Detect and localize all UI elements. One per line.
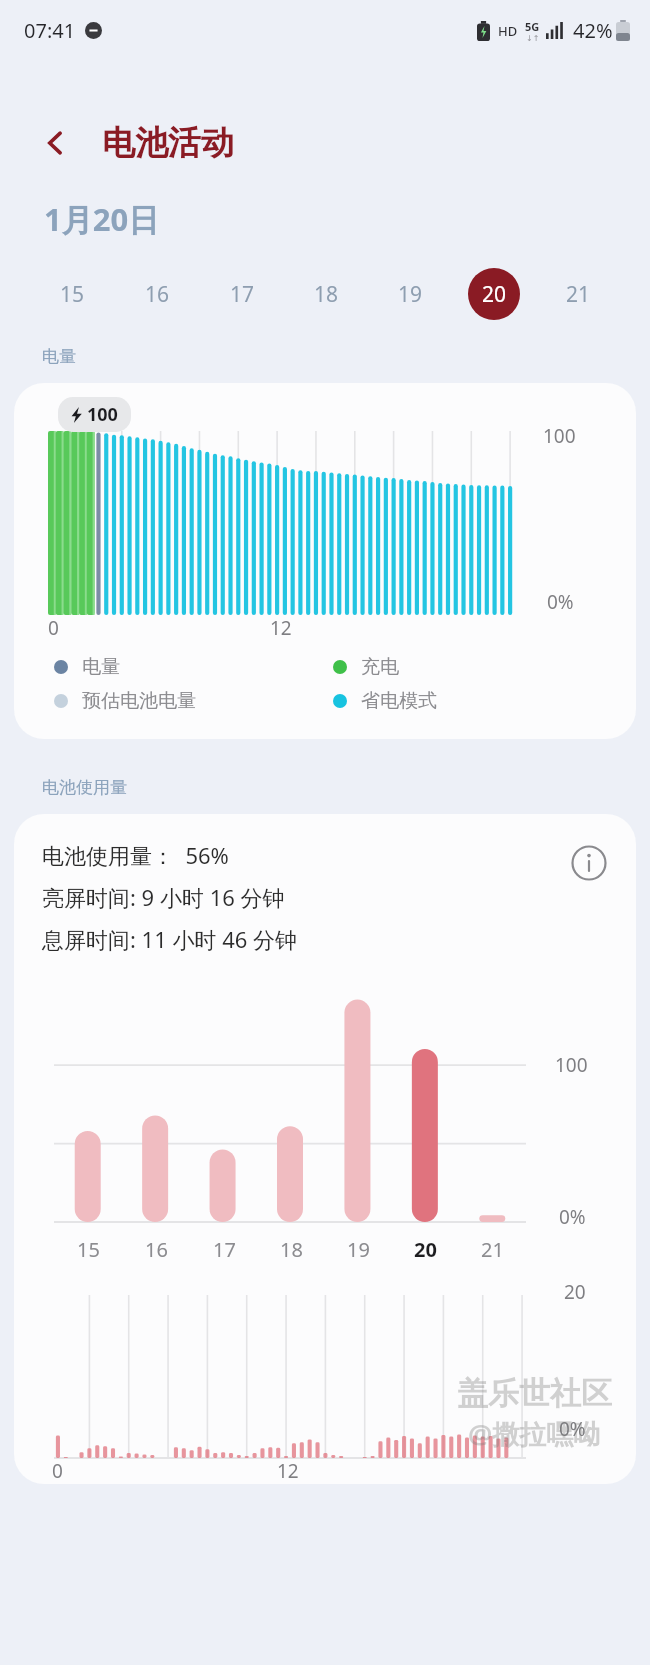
- button[interactable]: Info: [566, 840, 612, 886]
- staticText: 0: [52, 1458, 63, 1484]
- staticText: 20: [482, 280, 507, 309]
- staticText: 电量: [82, 655, 120, 679]
- staticText: @撒拉嘿呦: [468, 1415, 601, 1452]
- staticText: 19: [398, 280, 423, 309]
- staticText: 1月20日: [44, 198, 160, 240]
- staticText: 42%: [573, 17, 613, 44]
- staticText: 电池活动: [102, 122, 234, 164]
- staticText: 17: [230, 280, 255, 309]
- staticText: 息屏时间: 11 小时 46 分钟: [42, 924, 298, 954]
- staticText: 0%: [559, 1204, 586, 1230]
- staticText: 盖乐世社区: [457, 1374, 612, 1413]
- staticText: 5G: [525, 19, 540, 34]
- staticText: 0%: [559, 1416, 586, 1442]
- staticText: 15: [60, 280, 85, 309]
- staticText: 亮屏时间: 9 小时 16 分钟: [42, 882, 285, 912]
- button[interactable]: 20: [452, 262, 536, 326]
- button[interactable]: 18: [284, 262, 368, 326]
- button[interactable]: 15: [30, 262, 115, 326]
- staticText: 21: [566, 280, 591, 309]
- button[interactable]: 16: [115, 262, 200, 326]
- staticText: 19: [347, 1236, 370, 1263]
- staticText: 21: [481, 1236, 504, 1263]
- staticText: 电池使用量: [42, 777, 127, 798]
- staticText: 省电模式: [361, 689, 437, 713]
- staticText: 16: [145, 1236, 168, 1263]
- staticText: 16: [145, 280, 170, 309]
- staticText: 15: [77, 1236, 100, 1263]
- staticText: 0%: [547, 589, 574, 615]
- button[interactable]: 21: [536, 262, 620, 326]
- staticText: HD: [498, 22, 518, 40]
- staticText: 07:41: [24, 17, 76, 44]
- button[interactable]: 100: [14, 383, 636, 739]
- staticText: 100: [543, 423, 576, 449]
- staticText: 100: [555, 1052, 588, 1078]
- staticText: 预估电池电量: [82, 689, 196, 713]
- staticText: ↓↑: [526, 34, 540, 43]
- staticText: 20: [414, 1236, 437, 1263]
- staticText: 18: [314, 280, 339, 309]
- staticText: 100: [87, 402, 118, 427]
- staticText: 12: [270, 615, 292, 641]
- staticText: 充电: [361, 655, 399, 679]
- button[interactable]: Back: [32, 119, 80, 167]
- staticText: 0: [48, 615, 59, 641]
- staticText: 电量: [42, 346, 76, 367]
- staticText: 17: [213, 1236, 236, 1263]
- staticText: 电池使用量： 56%: [42, 840, 229, 870]
- button[interactable]: 19: [368, 262, 452, 326]
- staticText: 18: [280, 1236, 303, 1263]
- button[interactable]: 17: [200, 262, 284, 326]
- staticText: 12: [277, 1458, 299, 1484]
- staticText: 20: [564, 1279, 586, 1305]
